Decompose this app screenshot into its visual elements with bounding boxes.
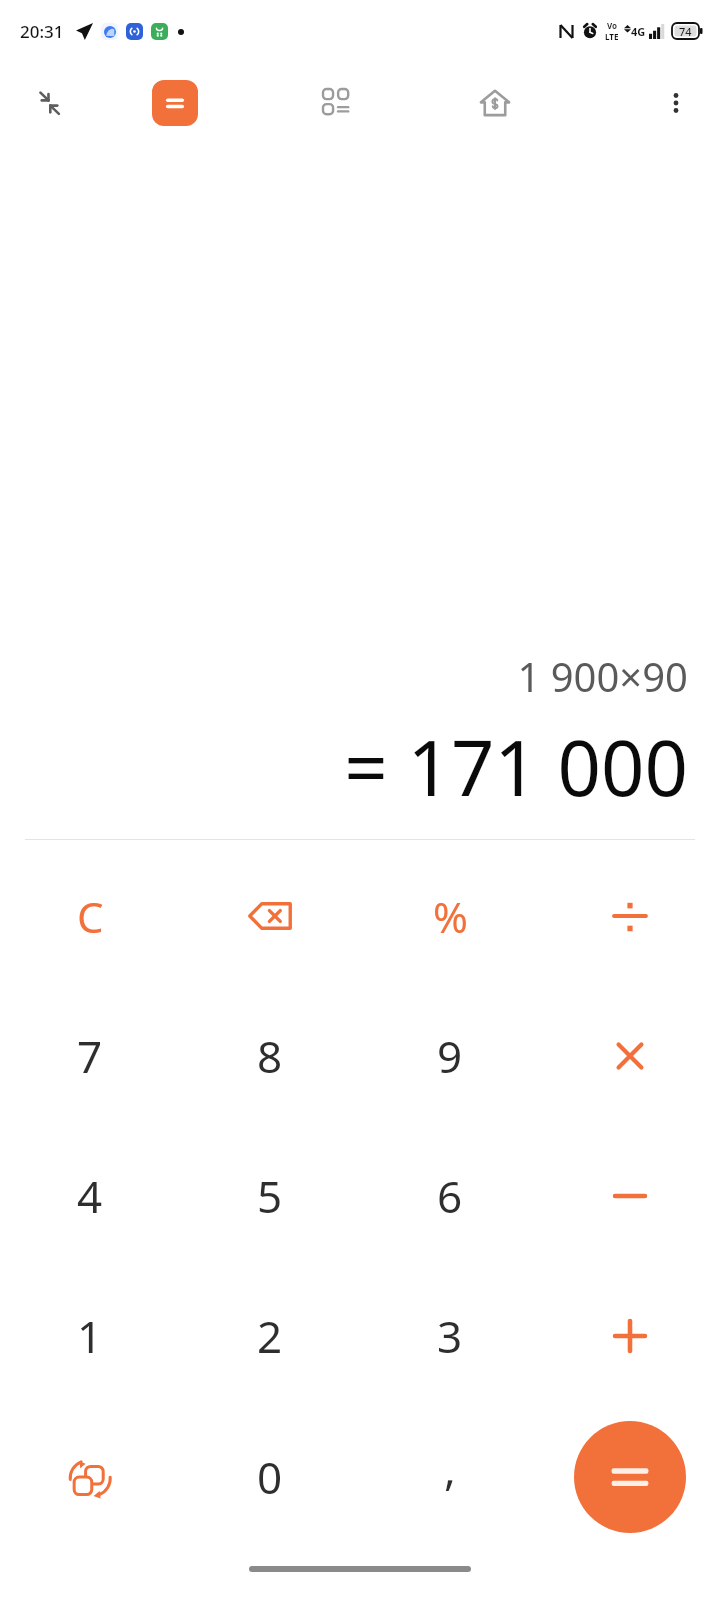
button[interactable]: Multiply	[540, 986, 720, 1126]
staticText: 1 900×90	[517, 649, 688, 703]
staticText: ,	[444, 1438, 456, 1498]
staticText: 0	[257, 1447, 283, 1507]
button[interactable]: 3	[360, 1266, 540, 1406]
staticText: 1	[77, 1306, 103, 1366]
button[interactable]: 0	[180, 1406, 360, 1548]
staticText: 9	[437, 1026, 463, 1086]
button[interactable]: %	[360, 846, 540, 986]
staticText: 8	[257, 1026, 283, 1086]
staticText: 3	[437, 1306, 463, 1366]
staticText: 2	[257, 1306, 283, 1366]
staticText: LTE	[605, 31, 619, 42]
button[interactable]: Collapse	[22, 76, 76, 130]
staticText: C	[77, 888, 104, 945]
button[interactable]: Backspace	[180, 846, 360, 986]
staticText: 5	[257, 1166, 283, 1226]
staticText: 74	[679, 24, 692, 39]
button[interactable]: ,	[360, 1406, 540, 1548]
button[interactable]: C	[0, 846, 180, 986]
staticText: 20:31	[20, 20, 64, 43]
button[interactable]: More options	[650, 77, 702, 129]
button[interactable]: Calculator	[152, 80, 198, 126]
staticText: 6	[437, 1166, 463, 1226]
button[interactable]: 1	[0, 1266, 180, 1406]
button[interactable]: Plus	[540, 1266, 720, 1406]
button[interactable]: Minus	[540, 1126, 720, 1266]
button[interactable]: Divide	[540, 846, 720, 986]
button[interactable]: 2	[180, 1266, 360, 1406]
button[interactable]: Equals	[574, 1421, 686, 1533]
staticText: = 171 000	[344, 715, 688, 819]
button[interactable]: 9	[360, 986, 540, 1126]
button[interactable]: 5	[180, 1126, 360, 1266]
button[interactable]: Mortgage	[468, 76, 522, 130]
button[interactable]: 4	[0, 1126, 180, 1266]
staticText: Vo	[607, 20, 618, 31]
button[interactable]: 8	[180, 986, 360, 1126]
staticText: 4	[77, 1166, 103, 1226]
button[interactable]: Converter	[0, 1406, 180, 1548]
button[interactable]: Converters	[310, 76, 364, 130]
staticText: %	[433, 888, 468, 945]
button[interactable]: 7	[0, 986, 180, 1126]
staticText: 7	[77, 1026, 103, 1086]
staticText: 4G	[631, 24, 646, 39]
button[interactable]: 6	[360, 1126, 540, 1266]
